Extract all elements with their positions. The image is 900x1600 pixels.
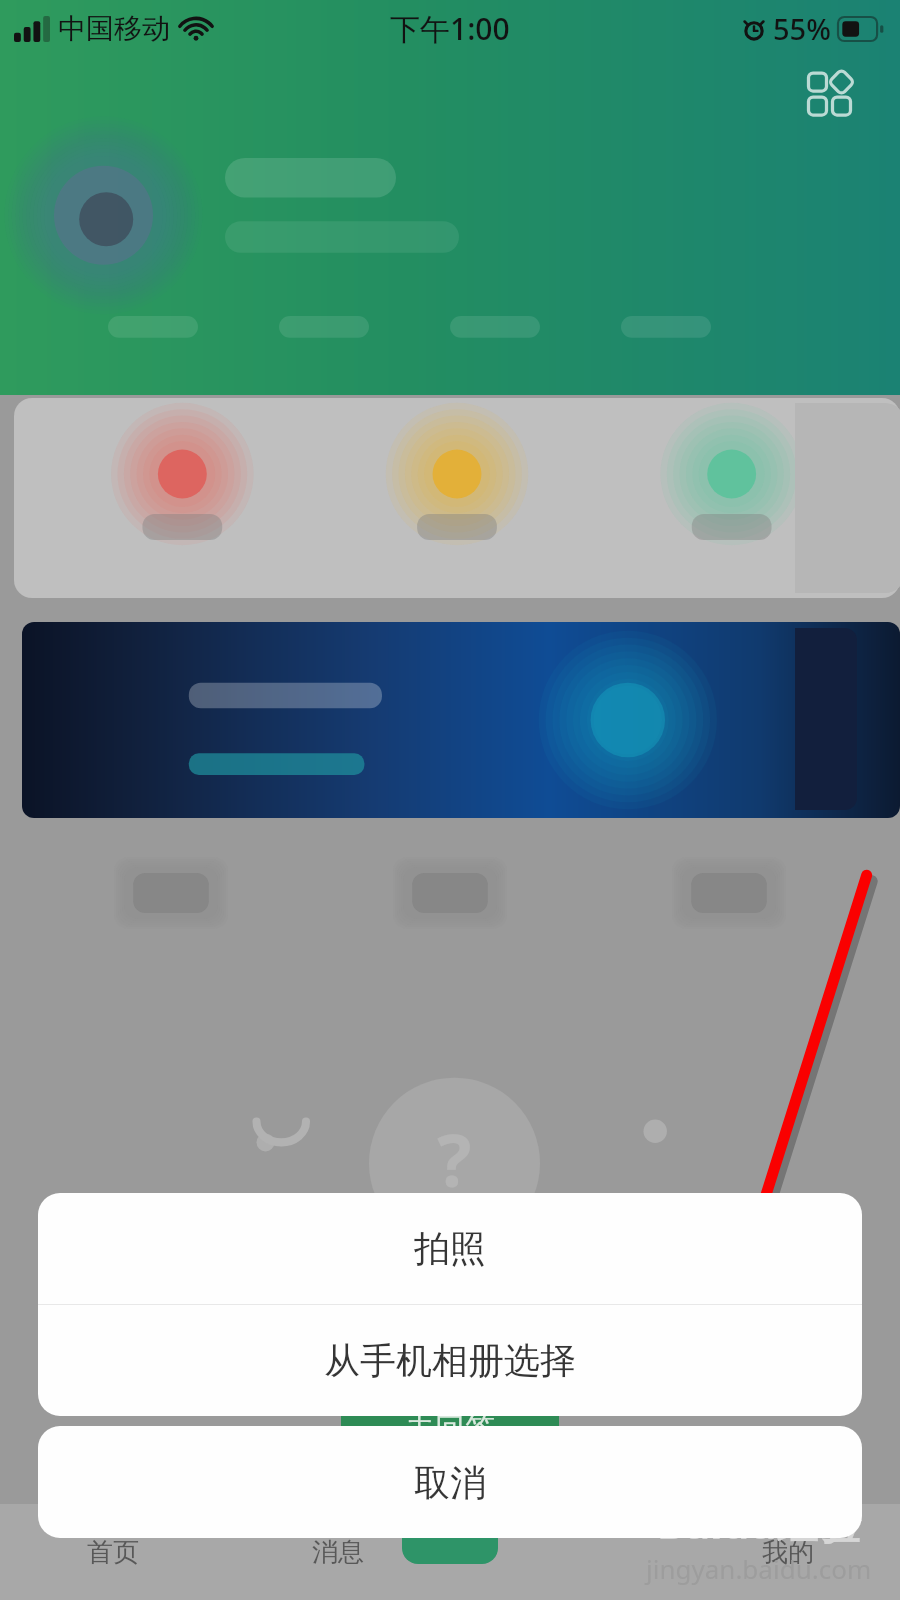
button[interactable]	[450, 1504, 675, 1600]
button[interactable]: Ask question	[402, 1490, 498, 1564]
staticText: jingyan.baidu.com	[646, 1551, 872, 1586]
staticText: 去回答	[405, 1410, 495, 1448]
button[interactable]: 拍照	[38, 1193, 862, 1304]
button[interactable]: 消息	[225, 1504, 450, 1600]
staticText: 我的	[762, 1536, 814, 1569]
staticText: 消息	[312, 1536, 364, 1569]
staticText: 取消	[414, 1460, 486, 1505]
button[interactable]: 去回答	[341, 1398, 559, 1460]
staticText: 首页	[87, 1536, 139, 1569]
button[interactable]: 从手机相册选择	[38, 1305, 862, 1416]
button[interactable]: 首页	[0, 1504, 225, 1600]
button[interactable]: 我的	[675, 1504, 900, 1600]
staticText: Baidu经验	[657, 1494, 861, 1551]
staticText: 拍照	[414, 1226, 486, 1271]
staticText: 下午1:00	[390, 8, 510, 49]
button[interactable]: Grid menu	[800, 62, 862, 124]
staticText: ?	[437, 1110, 472, 1208]
staticText: 55%	[773, 9, 831, 48]
button[interactable]: 取消	[38, 1426, 862, 1538]
staticText: 从手机相册选择	[324, 1338, 576, 1383]
staticText: 中国移动	[58, 11, 170, 46]
